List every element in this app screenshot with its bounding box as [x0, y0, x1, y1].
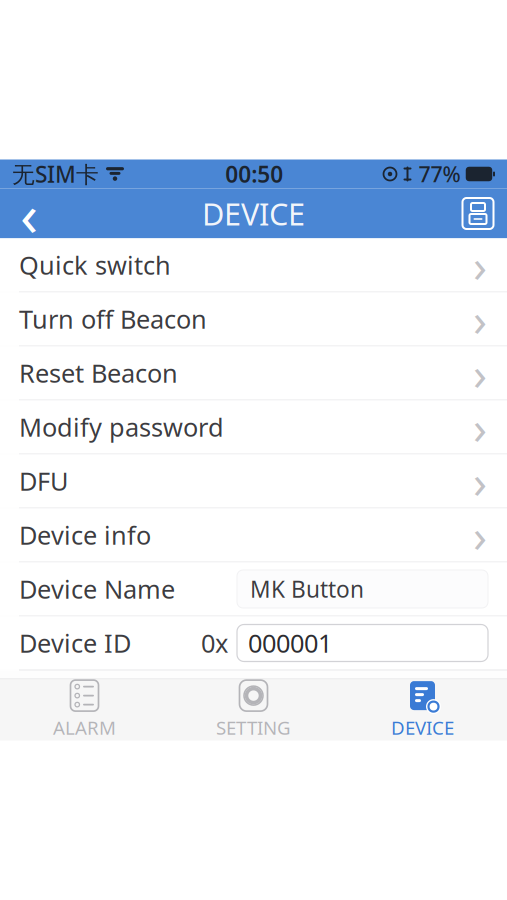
- staticText: 00:50: [225, 159, 283, 189]
- staticText: Modify password: [19, 410, 224, 444]
- button[interactable]: Save: [449, 188, 507, 238]
- button[interactable]: DEVICE: [338, 679, 507, 740]
- staticText: Quick switch: [19, 248, 171, 282]
- button[interactable]: Modify password: [0, 400, 507, 454]
- button[interactable]: SETTING: [169, 679, 338, 740]
- staticText: 77%: [418, 160, 460, 188]
- staticText: 无SIM卡: [12, 159, 99, 189]
- staticText: 000001: [248, 626, 332, 660]
- staticText: Turn off Beacon: [19, 302, 207, 336]
- staticText: MK Button: [250, 574, 364, 604]
- staticText: Device ID: [19, 626, 131, 660]
- staticText: ›: [473, 235, 487, 295]
- staticText: DEVICE: [391, 715, 454, 740]
- staticText: ›: [473, 343, 487, 403]
- button[interactable]: Device info: [0, 508, 507, 562]
- button[interactable]: Reset Beacon: [0, 346, 507, 400]
- staticText: Device Name: [19, 572, 175, 606]
- staticText: ALARM: [53, 715, 116, 740]
- staticText: Device info: [19, 518, 151, 552]
- staticText: DFU: [19, 464, 69, 498]
- button[interactable]: ALARM: [0, 679, 169, 740]
- staticText: DEVICE: [202, 193, 305, 234]
- staticText: ›: [473, 397, 487, 457]
- staticText: 0x: [201, 626, 228, 660]
- staticText: ›: [473, 289, 487, 349]
- button[interactable]: Quick switch: [0, 238, 507, 292]
- button[interactable]: DFU: [0, 454, 507, 508]
- staticText: ‹: [20, 174, 38, 252]
- staticText: ›: [473, 505, 487, 565]
- staticText: Reset Beacon: [19, 356, 178, 390]
- staticText: SETTING: [216, 715, 291, 740]
- button[interactable]: Turn off Beacon: [0, 292, 507, 346]
- button[interactable]: Back: [0, 188, 58, 238]
- staticText: ›: [473, 451, 487, 511]
